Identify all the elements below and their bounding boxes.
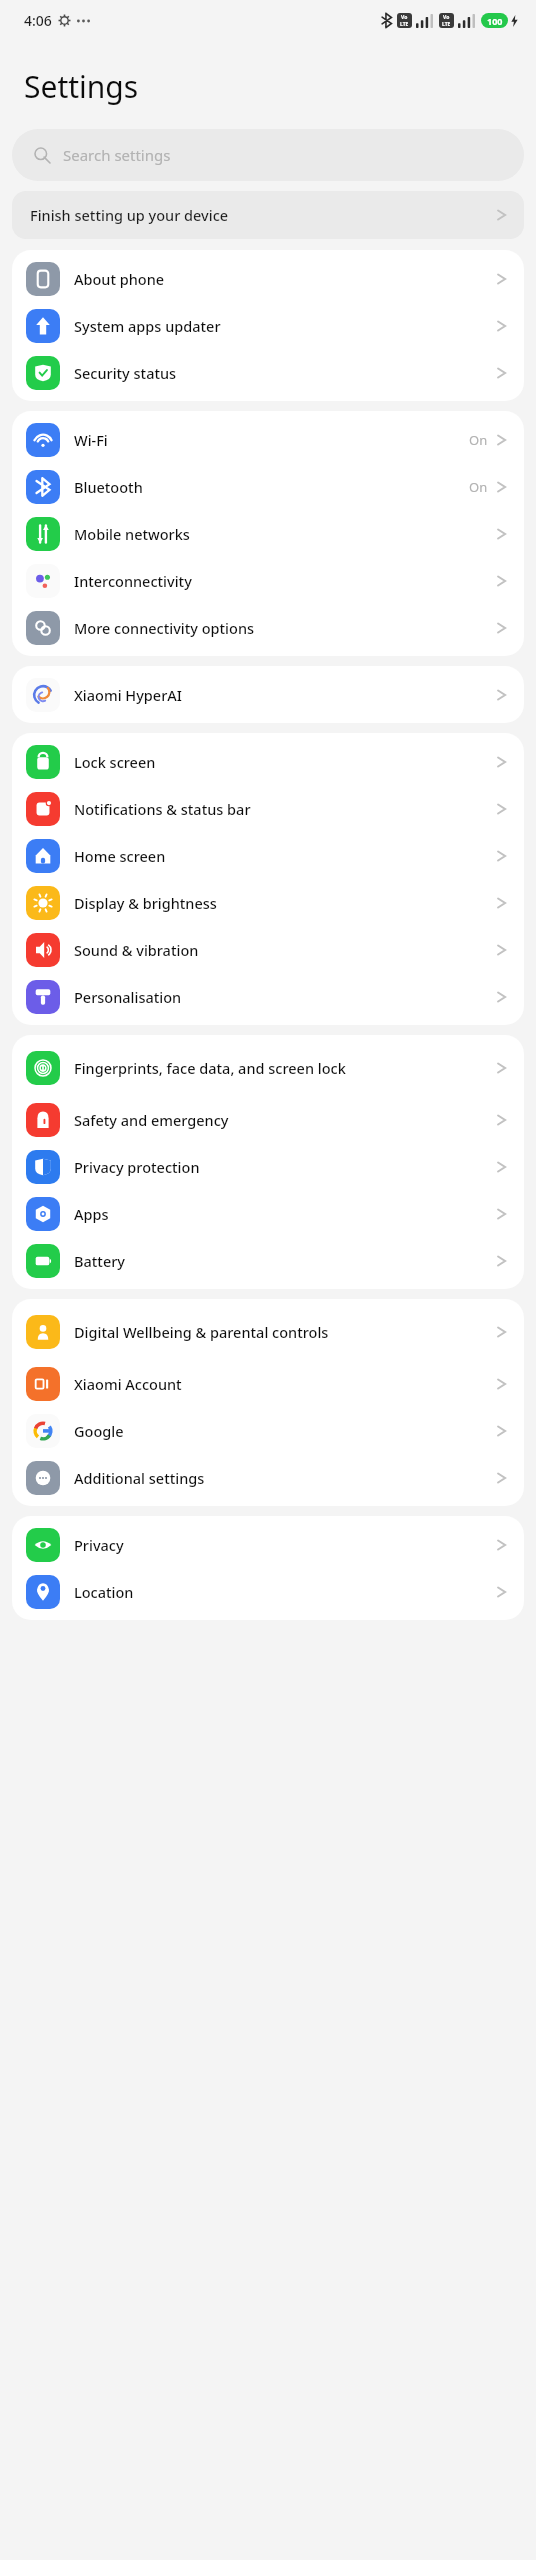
button[interactable]: Home screen xyxy=(12,832,524,879)
staticText: Bluetooth xyxy=(74,477,461,497)
staticText: Additional settings xyxy=(74,1468,489,1488)
button[interactable]: Lock screen xyxy=(12,738,524,785)
staticText: On xyxy=(469,478,488,496)
staticText: Digital Wellbeing & parental controls xyxy=(74,1322,489,1342)
staticText: Xiaomi HyperAI xyxy=(74,685,489,705)
staticText: Fingerprints, face data, and screen lock xyxy=(74,1058,489,1078)
staticText: LTE xyxy=(442,21,451,28)
button[interactable]: System apps updater xyxy=(12,302,524,349)
button[interactable]: Display & brightness xyxy=(12,879,524,926)
staticText: Settings xyxy=(24,66,139,107)
staticText: Google xyxy=(74,1421,489,1441)
button[interactable]: Sound & vibration xyxy=(12,926,524,973)
staticText: About phone xyxy=(74,269,489,289)
button[interactable]: More connectivity options xyxy=(12,604,524,651)
staticText: Home screen xyxy=(74,846,489,866)
staticText: Safety and emergency xyxy=(74,1110,489,1130)
button[interactable]: Privacy xyxy=(12,1521,524,1568)
button[interactable]: Security status xyxy=(12,349,524,396)
button[interactable]: Google xyxy=(12,1407,524,1454)
button[interactable]: Digital Wellbeing & parental controls xyxy=(12,1304,524,1360)
staticText: Privacy xyxy=(74,1535,489,1555)
button[interactable]: Xiaomi HyperAI xyxy=(12,671,524,718)
button[interactable]: About phone xyxy=(12,255,524,302)
staticText: LTE xyxy=(400,21,409,28)
staticText: Personalisation xyxy=(74,987,489,1007)
button[interactable]: Wi-Fi xyxy=(12,416,524,463)
staticText: More connectivity options xyxy=(74,618,489,638)
staticText: Finish setting up your device xyxy=(30,205,229,225)
button[interactable]: Notifications & status bar xyxy=(12,785,524,832)
staticText: On xyxy=(469,431,488,449)
staticText: System apps updater xyxy=(74,316,489,336)
staticText: Sound & vibration xyxy=(74,940,489,960)
staticText: Battery xyxy=(74,1251,489,1271)
staticText: Mobile networks xyxy=(74,524,489,544)
staticText: Vo xyxy=(443,14,450,21)
staticText: 100 xyxy=(487,15,503,27)
button[interactable]: Mobile networks xyxy=(12,510,524,557)
button[interactable]: Fingerprints, face data, and screen lock xyxy=(12,1040,524,1096)
staticText: Lock screen xyxy=(74,752,489,772)
button[interactable]: Additional settings xyxy=(12,1454,524,1501)
staticText: Apps xyxy=(74,1204,489,1224)
staticText: 4:06 xyxy=(24,11,52,30)
staticText: Notifications & status bar xyxy=(74,799,489,819)
staticText: Vo xyxy=(401,14,408,21)
button[interactable]: Xiaomi Account xyxy=(12,1360,524,1407)
button[interactable]: Privacy protection xyxy=(12,1143,524,1190)
button[interactable]: Personalisation xyxy=(12,973,524,1020)
staticText: Wi-Fi xyxy=(74,430,461,450)
button[interactable]: Finish setting up your device xyxy=(12,191,524,239)
staticText: Xiaomi Account xyxy=(74,1374,489,1394)
button[interactable]: Bluetooth xyxy=(12,463,524,510)
button[interactable]: Search settings xyxy=(12,129,524,181)
button[interactable]: Apps xyxy=(12,1190,524,1237)
staticText: Security status xyxy=(74,363,489,383)
staticText: Search settings xyxy=(63,145,171,165)
button[interactable]: Safety and emergency xyxy=(12,1096,524,1143)
staticText: Location xyxy=(74,1582,489,1602)
staticText: Privacy protection xyxy=(74,1157,489,1177)
button[interactable]: Battery xyxy=(12,1237,524,1284)
button[interactable]: Interconnectivity xyxy=(12,557,524,604)
staticText: Display & brightness xyxy=(74,893,489,913)
staticText: Interconnectivity xyxy=(74,571,489,591)
button[interactable]: Location xyxy=(12,1568,524,1615)
